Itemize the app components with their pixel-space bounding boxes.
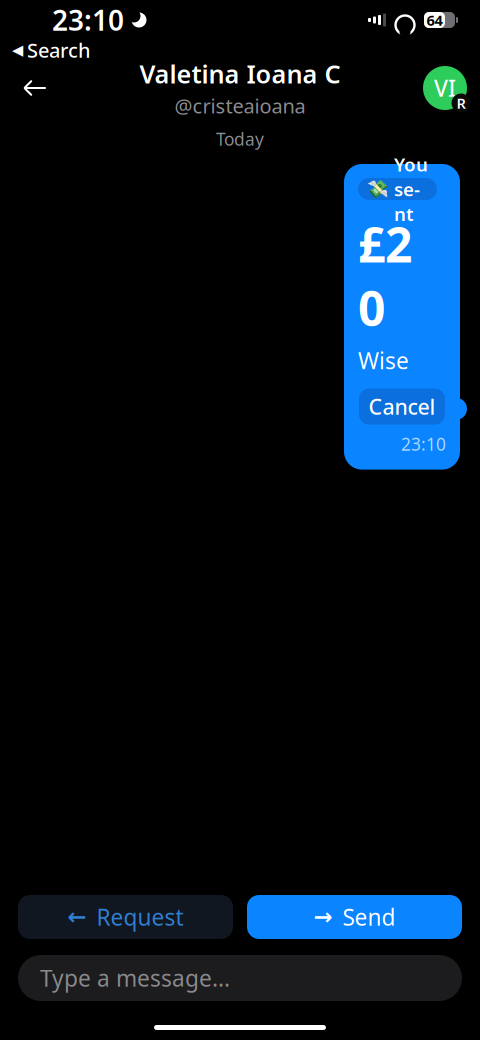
staticText: VI (434, 73, 456, 103)
button[interactable]: Profile (418, 61, 472, 115)
staticText: Today (216, 127, 264, 150)
button[interactable]: → (247, 895, 462, 939)
staticText: Search (27, 37, 91, 63)
staticText: 23:10 (401, 433, 446, 456)
staticText: Wise (358, 345, 409, 376)
staticText: R (456, 93, 465, 113)
staticText: ← (67, 904, 86, 930)
staticText: Request (96, 902, 183, 932)
staticText: Cancel (368, 392, 435, 421)
staticText: @cristeaioana (174, 92, 305, 119)
staticText: Valetina Ioana C (139, 57, 340, 90)
button[interactable]: Type a message... (18, 955, 462, 1001)
staticText: 23:10 (52, 1, 124, 39)
button[interactable]: Back (8, 61, 62, 115)
staticText: Send (342, 902, 395, 932)
staticText: 64 (426, 10, 442, 30)
staticText: ◀ (12, 42, 23, 58)
staticText: → (313, 904, 332, 930)
button[interactable]: Cancel (359, 389, 445, 425)
button[interactable]: ← (18, 895, 233, 939)
staticText: £20 (358, 212, 412, 339)
staticText: 💸 (367, 179, 389, 199)
staticText: Type a message... (40, 963, 230, 993)
staticText: You sent (394, 152, 428, 226)
